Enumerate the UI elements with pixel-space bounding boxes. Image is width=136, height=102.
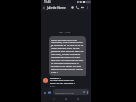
staticText: 09:24 — [50, 85, 56, 88]
button[interactable]: Call — [75, 5, 80, 10]
button[interactable]: Back — [48, 96, 60, 102]
button[interactable]: Profile — [70, 5, 75, 10]
button[interactable]: Recents — [72, 96, 84, 102]
staticText: Juliette Horne — [47, 6, 66, 10]
staticText: Bonjour ! Tu fais quoi pour les fêtes de… — [50, 76, 75, 85]
button[interactable]: More options — [85, 5, 90, 10]
button[interactable]: Video call — [80, 5, 85, 10]
staticText: 10:45 — [44, 0, 51, 4]
button[interactable]: Back — [42, 6, 46, 10]
button[interactable]: Add attachment — [42, 90, 47, 95]
button[interactable]: Camera — [47, 90, 52, 95]
staticText: Message de chat — [55, 91, 74, 94]
staticText: Hier 17:02 — [43, 31, 86, 34]
staticText: Hello j'ai bien reçu ton message, merci … — [51, 38, 84, 74]
button[interactable]: Home — [60, 96, 72, 102]
button[interactable]: Message de chat — [53, 89, 89, 95]
